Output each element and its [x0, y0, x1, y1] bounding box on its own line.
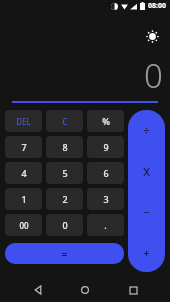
- button[interactable]: 0: [46, 214, 83, 236]
- staticText: ÷: [143, 123, 150, 138]
- staticText: 08:00: [148, 1, 166, 11]
- button[interactable]: 7: [5, 136, 42, 158]
- staticText: 00: [19, 220, 29, 231]
- button[interactable]: 5: [46, 162, 83, 184]
- button[interactable]: 1: [5, 188, 42, 210]
- staticText: DEL: [16, 116, 31, 127]
- button[interactable]: 00: [5, 214, 42, 236]
- staticText: .: [104, 219, 107, 231]
- button[interactable]: 8: [46, 136, 83, 158]
- button[interactable]: =: [5, 243, 124, 264]
- button[interactable]: %: [87, 110, 124, 132]
- staticText: 5: [62, 167, 68, 179]
- staticText: +: [143, 245, 150, 260]
- button[interactable]: .: [87, 214, 124, 236]
- staticText: 4: [21, 167, 27, 179]
- staticText: 7: [21, 141, 27, 153]
- staticText: %: [102, 115, 110, 127]
- staticText: 0: [144, 53, 163, 98]
- staticText: 2: [62, 193, 68, 205]
- button[interactable]: 6: [87, 162, 124, 184]
- button[interactable]: +: [128, 232, 165, 272]
- staticText: X: [143, 164, 150, 179]
- button[interactable]: 9: [87, 136, 124, 158]
- staticText: 9: [103, 141, 109, 153]
- button[interactable]: Back: [28, 280, 48, 300]
- staticText: 3: [103, 193, 109, 205]
- button[interactable]: 3: [87, 188, 124, 210]
- staticText: 1: [21, 193, 27, 205]
- button[interactable]: Recent apps: [123, 280, 143, 300]
- button[interactable]: X: [128, 151, 165, 191]
- staticText: 8: [62, 141, 68, 153]
- button[interactable]: DEL: [5, 110, 42, 132]
- button[interactable]: ÷: [128, 110, 165, 150]
- button[interactable]: Toggle theme: [142, 26, 162, 46]
- button[interactable]: 2: [46, 188, 83, 210]
- staticText: −: [143, 204, 150, 219]
- staticText: =: [61, 246, 68, 261]
- button[interactable]: Home: [75, 280, 95, 300]
- button[interactable]: −: [128, 191, 165, 231]
- button[interactable]: 4: [5, 162, 42, 184]
- staticText: C: [62, 115, 68, 127]
- button[interactable]: C: [46, 110, 83, 132]
- staticText: 6: [103, 167, 109, 179]
- staticText: 0: [62, 219, 68, 231]
